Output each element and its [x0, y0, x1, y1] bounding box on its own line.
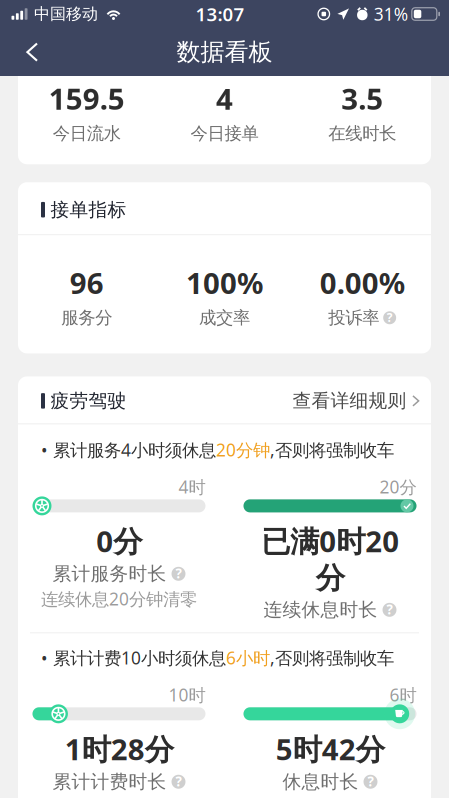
staticText: 4时 [178, 475, 205, 498]
staticText: 中国移动 [34, 4, 98, 24]
staticText: 今日接单 [190, 123, 258, 144]
staticText: 13:07 [195, 2, 244, 26]
staticText: 连续休息时长 [263, 598, 377, 621]
staticText: ,否则将强制收车 [270, 438, 394, 461]
staticText: ? [175, 564, 181, 582]
staticText: 休息时长 [282, 770, 358, 793]
staticText: 20分钟 [216, 438, 270, 461]
staticText: 已满0时20分 [261, 521, 399, 596]
staticText: 1时28分 [64, 729, 173, 768]
button[interactable]: 返回 [0, 30, 54, 73]
staticText: 31% [374, 2, 408, 25]
staticText: 6小时 [226, 646, 270, 669]
staticText: 累计计费时长 [52, 770, 166, 793]
staticText: ? [175, 772, 181, 790]
staticText: ? [387, 309, 393, 325]
staticText: 在线时长 [328, 123, 396, 144]
staticText: 疲劳驾驶 [50, 389, 126, 412]
staticText: 累计服务时长 [52, 562, 166, 585]
staticText: 5时42分 [275, 729, 384, 768]
staticText: 10时 [168, 683, 205, 706]
staticText: 今日流水 [53, 123, 121, 144]
staticText: 数据看板 [176, 37, 272, 67]
button[interactable]: 查看详细规则 [292, 389, 419, 412]
staticText: 6时 [389, 683, 416, 706]
staticText: 4 [216, 79, 233, 118]
staticText: 接单指标 [50, 198, 126, 221]
staticText: 96 [70, 263, 104, 302]
staticText: 投诉率 [328, 307, 379, 328]
staticText: 连续休息20分钟清零 [41, 587, 197, 610]
staticText: ? [386, 600, 392, 618]
staticText: 累计服务4小时须休息 [48, 438, 216, 461]
staticText: 3.5 [341, 79, 383, 118]
staticText: 累计计费10小时须休息 [48, 646, 226, 669]
staticText: 成交率 [199, 307, 250, 328]
staticText: ,否则将强制收车 [270, 646, 394, 669]
staticText: 0分 [96, 521, 142, 560]
staticText: 20分 [379, 475, 416, 498]
staticText: 0.00% [320, 263, 405, 302]
staticText: • [41, 438, 48, 461]
staticText: ? [367, 772, 373, 790]
staticText: • [41, 646, 48, 669]
staticText: 查看详细规则 [292, 389, 406, 412]
staticText: 159.5 [49, 79, 125, 118]
staticText: 服务分 [61, 307, 112, 328]
staticText: 100% [186, 263, 263, 302]
